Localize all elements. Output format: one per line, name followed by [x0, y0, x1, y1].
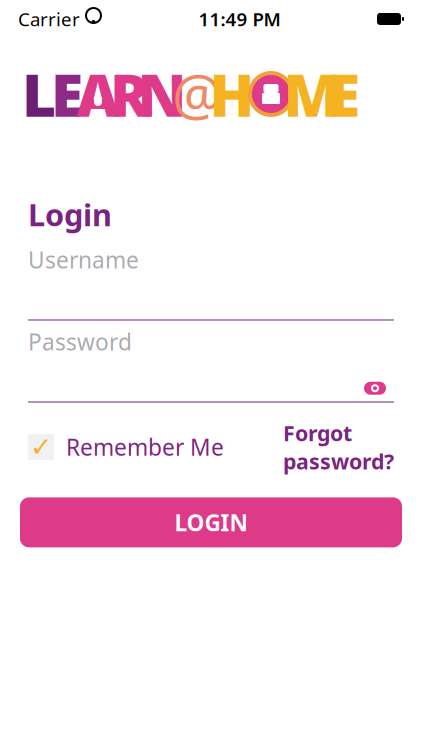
staticText: A — [76, 55, 119, 133]
button[interactable]: Forgot password? — [283, 415, 394, 479]
staticText: Password — [28, 327, 132, 357]
staticText: LOGIN — [174, 507, 247, 537]
button[interactable]: LOGIN — [20, 497, 402, 547]
staticText: @ — [172, 57, 222, 131]
staticText: E — [328, 55, 360, 133]
staticText: H — [209, 55, 254, 133]
staticText: Username — [28, 245, 139, 275]
staticText: M — [283, 55, 340, 133]
button[interactable]: Show password — [356, 375, 394, 401]
staticText: R — [110, 55, 150, 133]
staticText: N — [137, 55, 186, 133]
staticText: Remember Me — [66, 432, 224, 462]
staticText: E — [51, 55, 83, 133]
button[interactable]: ✓ — [28, 428, 224, 466]
staticText: Login — [28, 194, 112, 235]
staticText: ✓ — [30, 432, 52, 462]
staticText: Carrier — [18, 7, 80, 31]
staticText: L — [22, 55, 56, 133]
staticText: Forgot password? — [283, 419, 394, 475]
staticText: 11:49 PM — [198, 7, 280, 31]
